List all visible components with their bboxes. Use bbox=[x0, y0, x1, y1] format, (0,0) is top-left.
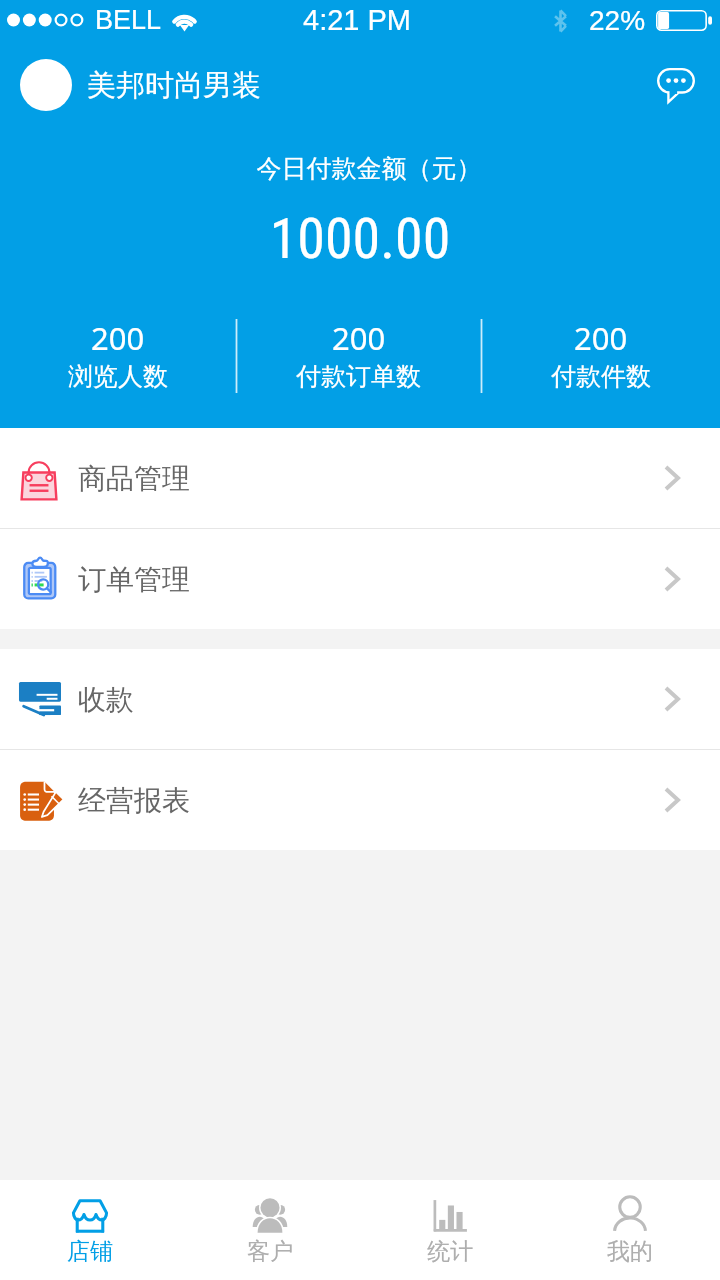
staticText: 今日付款金额（元） bbox=[9, 153, 720, 184]
button[interactable]: 订单管理 bbox=[0, 529, 720, 629]
staticText: 22% bbox=[589, 5, 646, 36]
staticText: 我的 bbox=[607, 1237, 653, 1266]
staticText: 客户 bbox=[247, 1237, 293, 1266]
staticText: 订单管理 bbox=[78, 562, 190, 597]
staticText: 浏览人数 bbox=[68, 361, 168, 392]
button[interactable]: 美邦时尚男装 bbox=[20, 59, 261, 111]
staticText: 店铺 bbox=[67, 1237, 113, 1266]
staticText: 统计 bbox=[427, 1237, 473, 1266]
button[interactable]: 经营报表 bbox=[0, 750, 720, 850]
button[interactable]: 客户 bbox=[180, 1180, 360, 1280]
button[interactable]: 收款 bbox=[0, 649, 720, 749]
button[interactable]: 200 bbox=[0, 312, 236, 396]
staticText: 美邦时尚男装 bbox=[87, 67, 261, 104]
button[interactable]: Messages bbox=[648, 57, 704, 113]
staticText: 200 bbox=[91, 317, 145, 359]
staticText: 200 bbox=[574, 317, 628, 359]
staticText: 付款件数 bbox=[551, 361, 651, 392]
staticText: 1000.00 bbox=[0, 206, 720, 272]
button[interactable]: 我的 bbox=[540, 1180, 720, 1280]
staticText: 200 bbox=[332, 317, 386, 359]
staticText: 商品管理 bbox=[78, 461, 190, 496]
staticText: BELL bbox=[95, 5, 162, 35]
staticText: 付款订单数 bbox=[296, 361, 421, 392]
staticText: 4:21 PM bbox=[303, 4, 411, 36]
button[interactable]: 200 bbox=[236, 312, 481, 396]
staticText: 经营报表 bbox=[78, 783, 190, 818]
staticText: 收款 bbox=[78, 682, 134, 717]
button[interactable]: 统计 bbox=[360, 1180, 540, 1280]
button[interactable]: 店铺 bbox=[0, 1180, 180, 1280]
button[interactable]: 商品管理 bbox=[0, 428, 720, 528]
button[interactable]: 200 bbox=[481, 312, 720, 396]
